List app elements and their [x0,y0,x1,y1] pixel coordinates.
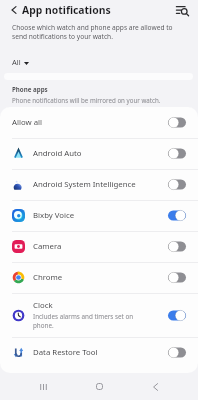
staticText: Choose which watch and phone apps are al… [12,23,187,41]
staticText: App notifications [22,3,111,17]
button[interactable]: Back [141,373,170,400]
staticText: Phone apps [12,85,48,93]
button[interactable]: All [12,57,29,67]
button[interactable]: Off [168,179,186,190]
staticText: Camera [33,241,62,252]
button[interactable]: Off [168,272,186,283]
staticText: Bixby Voice [33,210,75,221]
button[interactable]: Android System Intelligence [0,169,198,200]
button[interactable]: Chrome [0,262,198,293]
button[interactable]: Off [168,148,186,159]
staticText: All [12,57,21,67]
staticText: Allow all [12,117,43,128]
button[interactable]: Back [7,3,21,17]
button[interactable]: Search [175,3,189,17]
staticText: Chrome [33,272,63,283]
button[interactable]: Recent apps [29,373,58,400]
button[interactable]: Home [85,373,114,400]
button[interactable]: Bixby Voice [0,200,198,231]
button[interactable]: Off [168,347,186,358]
button[interactable]: Android Auto [0,138,198,169]
button[interactable]: Camera [0,231,198,262]
staticText: Phone notifications will be mirrored on … [12,96,161,104]
button[interactable]: Off [168,241,186,252]
button[interactable]: On [168,310,186,321]
staticText: Android System Intelligence [33,179,136,190]
button[interactable]: Off [168,117,186,128]
button[interactable]: Clock [0,293,198,337]
button[interactable]: On [168,210,186,221]
staticText: Android Auto [33,148,82,159]
button[interactable]: Allow all [0,107,198,138]
staticText: Includes alarms and timers set on phone. [33,312,149,330]
staticText: Clock [33,300,53,311]
staticText: Data Restore Tool [33,347,98,358]
button[interactable]: Data Restore Tool [0,337,198,368]
